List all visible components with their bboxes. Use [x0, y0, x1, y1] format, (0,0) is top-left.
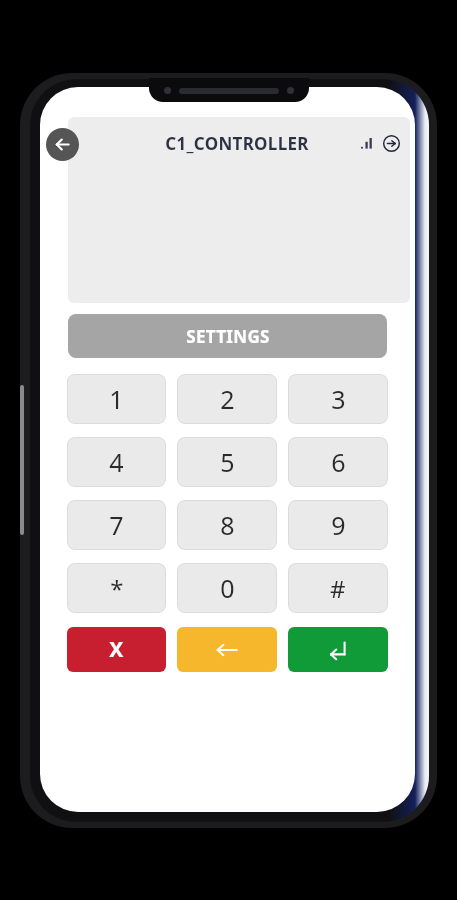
staticText: 4 — [109, 445, 124, 479]
button[interactable]: Backspace — [177, 627, 277, 672]
button[interactable]: * — [67, 563, 166, 613]
button[interactable]: 0 — [177, 563, 277, 613]
button[interactable]: Back — [46, 128, 79, 161]
button[interactable]: 9 — [288, 500, 388, 550]
staticText: 8 — [220, 508, 235, 542]
button[interactable]: 5 — [177, 437, 277, 487]
staticText: 3 — [331, 382, 346, 416]
button[interactable]: SETTINGS — [68, 314, 387, 358]
staticText: 0 — [220, 571, 235, 605]
button[interactable]: 3 — [288, 374, 388, 424]
staticText: 7 — [109, 508, 124, 542]
staticText: 1 — [109, 382, 124, 416]
staticText: 6 — [331, 445, 346, 479]
button[interactable]: Connect — [381, 133, 401, 153]
button[interactable]: # — [288, 563, 388, 613]
staticText: 2 — [220, 382, 235, 416]
staticText: * — [110, 572, 124, 605]
staticText: # — [330, 572, 346, 605]
staticText: X — [109, 635, 124, 664]
button[interactable]: 7 — [67, 500, 166, 550]
button[interactable]: Signal strength — [359, 133, 378, 153]
button[interactable]: 2 — [177, 374, 277, 424]
button[interactable]: 6 — [288, 437, 388, 487]
button[interactable]: X — [67, 627, 166, 672]
staticText: C1_CONTROLLER — [165, 132, 309, 155]
button[interactable]: 4 — [67, 437, 166, 487]
staticText: SETTINGS — [186, 325, 270, 348]
button[interactable]: 8 — [177, 500, 277, 550]
button[interactable]: Enter — [288, 627, 388, 672]
staticText: 9 — [331, 508, 346, 542]
button[interactable]: 1 — [67, 374, 166, 424]
staticText: 5 — [220, 445, 235, 479]
